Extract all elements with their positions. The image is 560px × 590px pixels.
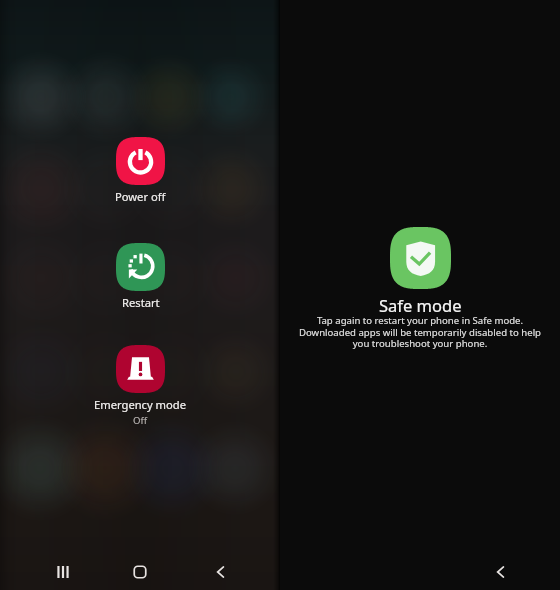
button[interactable]: Safe mode bbox=[390, 227, 451, 289]
staticText: Power off bbox=[115, 189, 166, 204]
staticText: Restart bbox=[122, 295, 160, 310]
button[interactable]: Restart bbox=[104, 243, 177, 310]
button[interactable]: Home bbox=[117, 549, 163, 590]
staticText: Off bbox=[133, 414, 148, 427]
button[interactable]: Back bbox=[196, 549, 242, 590]
button[interactable]: Emergency mode bbox=[82, 345, 199, 427]
button[interactable]: Power off bbox=[103, 137, 178, 204]
staticText: Tap again to restart your phone in Safe … bbox=[298, 314, 542, 350]
button[interactable]: Recent apps bbox=[40, 549, 86, 590]
staticText: Safe mode bbox=[379, 294, 462, 316]
staticText: Emergency mode bbox=[94, 397, 187, 412]
button[interactable]: Back bbox=[476, 549, 522, 590]
